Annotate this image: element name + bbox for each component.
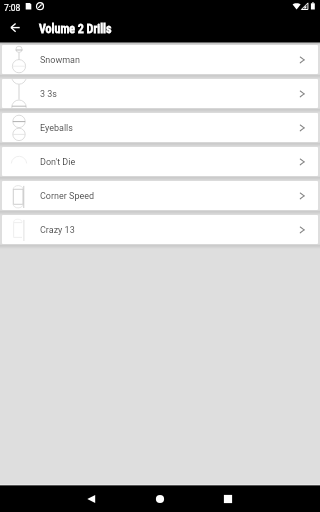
staticText: Snowman: [40, 55, 80, 66]
button[interactable]: Corner Speed: [2, 181, 318, 210]
button[interactable]: 3 3s: [2, 79, 318, 108]
staticText: Crazy 13: [40, 225, 75, 236]
button[interactable]: Crazy 13: [2, 215, 318, 244]
button[interactable]: Home: [145, 486, 175, 512]
button[interactable]: Don't Die: [2, 147, 318, 176]
staticText: Don't Die: [40, 157, 76, 168]
staticText: Corner Speed: [40, 191, 95, 202]
button[interactable]: Eyeballs: [2, 113, 318, 142]
staticText: 3 3s: [40, 89, 57, 100]
staticText: Volume 2 Drills: [39, 22, 112, 36]
staticText: 7:08: [4, 3, 21, 13]
button[interactable]: Back: [76, 486, 106, 512]
button[interactable]: Snowman: [2, 45, 318, 74]
button[interactable]: Navigate up: [0, 16, 30, 42]
staticText: Eyeballs: [40, 123, 73, 134]
button[interactable]: Recents: [213, 486, 243, 512]
